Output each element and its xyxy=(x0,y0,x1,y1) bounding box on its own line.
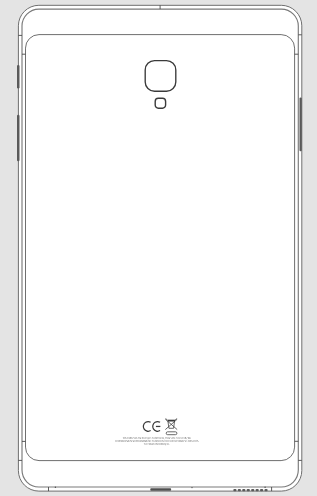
button[interactable]: SIM and memory card tray xyxy=(294,94,306,154)
button[interactable]: Speaker xyxy=(230,482,270,496)
button[interactable]: USB charging port xyxy=(146,482,176,496)
button[interactable]: Volume button xyxy=(13,112,25,164)
button[interactable]: Regulatory certification marks xyxy=(138,414,182,438)
button[interactable]: Power button xyxy=(13,62,25,91)
button[interactable]: Rear camera xyxy=(141,57,180,96)
button[interactable]: Camera flash xyxy=(151,94,169,112)
